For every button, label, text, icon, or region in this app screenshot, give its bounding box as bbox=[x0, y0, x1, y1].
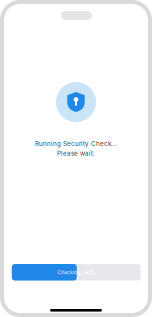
staticText: Please wait. bbox=[57, 150, 95, 157]
staticText: Running Security Check... bbox=[35, 140, 117, 148]
staticText: Checking... 50% bbox=[57, 269, 95, 275]
